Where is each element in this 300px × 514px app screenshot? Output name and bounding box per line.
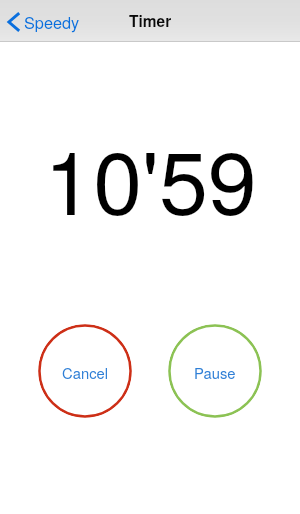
button[interactable]: Back bbox=[3, 7, 83, 36]
staticText: Cancel bbox=[62, 362, 109, 383]
button[interactable]: Cancel bbox=[38, 324, 132, 418]
staticText: 10'59 bbox=[44, 114, 257, 234]
staticText: Timer bbox=[129, 10, 172, 32]
staticText: Speedy bbox=[24, 10, 80, 33]
button[interactable]: Pause bbox=[168, 324, 262, 418]
other: Back bbox=[6, 12, 19, 32]
staticText: Pause bbox=[194, 362, 236, 383]
